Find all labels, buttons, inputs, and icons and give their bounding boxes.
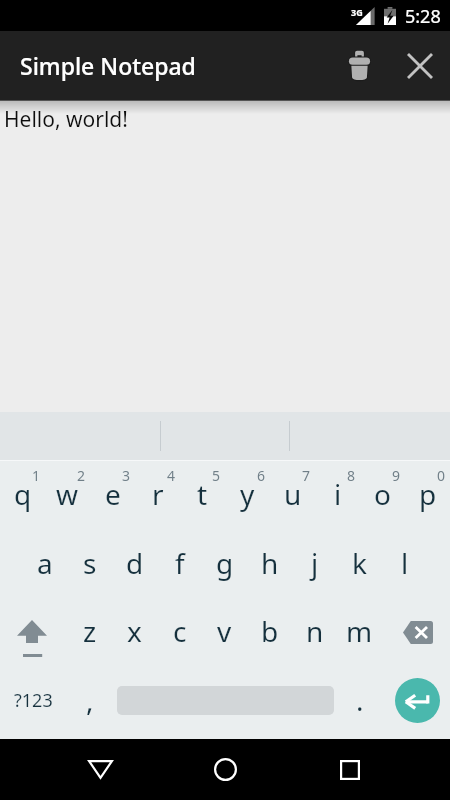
staticText: m [346,612,373,650]
button[interactable]: Enter [382,665,450,735]
staticText: r [152,475,164,513]
button[interactable]: 7 [270,461,315,530]
button[interactable]: 4 [135,461,180,530]
staticText: e [105,475,121,513]
button[interactable]: , [67,665,112,735]
button[interactable]: 1 [0,461,45,530]
staticText: i [334,475,342,513]
button[interactable]: v [202,599,247,669]
staticText: q [14,475,32,513]
staticText: z [83,612,97,650]
staticText: n [306,612,324,650]
staticText: 5:28 [405,4,441,29]
button[interactable]: a [22,530,67,599]
staticText: t [197,475,208,513]
staticText: f [175,544,185,582]
staticText: Simple Notepad [20,50,196,81]
button[interactable]: 8 [315,461,360,530]
staticText: h [261,544,279,582]
staticText: u [284,475,302,513]
button[interactable]: Home [187,744,263,795]
staticText: 3G [351,6,363,18]
button[interactable]: c [157,599,202,669]
staticText: 5 [212,466,221,485]
button[interactable]: Space [112,665,337,735]
staticText: d [126,544,144,582]
button[interactable]: 2 [45,461,90,530]
button[interactable]: ?123 [0,665,67,735]
button[interactable]: k [337,530,382,599]
button[interactable]: Back [62,744,138,795]
button[interactable]: b [247,599,292,669]
staticText: w [56,475,79,513]
button[interactable]: m [337,599,382,669]
button[interactable]: j [292,530,337,599]
staticText: y [240,475,255,513]
staticText: o [374,475,391,513]
button[interactable]: l [382,530,427,599]
staticText: 2 [77,466,86,485]
staticText: v [217,612,232,650]
staticText: s [83,544,97,582]
button[interactable]: f [157,530,202,599]
staticText: ?123 [14,688,53,713]
button[interactable]: h [247,530,292,599]
staticText: a [37,544,53,582]
staticText: Hello, world! [4,105,128,134]
staticText: 9 [392,466,401,485]
staticText: 1 [32,466,41,485]
button[interactable]: s [67,530,112,599]
staticText: l [401,544,409,582]
button[interactable]: d [112,530,157,599]
button[interactable]: 0 [405,461,450,530]
button[interactable]: Recent apps [312,744,388,795]
button[interactable]: 6 [225,461,270,530]
staticText: g [216,544,234,582]
button[interactable]: 5 [180,461,225,530]
button[interactable]: Close [389,31,449,100]
staticText: 8 [347,466,356,485]
button[interactable]: Delete note [329,31,389,100]
button[interactable]: n [292,599,337,669]
button[interactable]: 3 [90,461,135,530]
staticText: k [352,544,367,582]
staticText: c [173,612,187,650]
button[interactable]: 9 [360,461,405,530]
button[interactable]: z [67,599,112,669]
staticText: 6 [257,466,266,485]
button[interactable]: . [337,665,382,735]
button[interactable]: g [202,530,247,599]
staticText: 7 [302,466,311,485]
staticText: j [311,544,319,582]
staticText: 4 [167,466,176,485]
staticText: . [356,681,364,719]
button[interactable]: Shift [0,599,67,669]
staticText: b [261,612,279,650]
button[interactable]: x [112,599,157,669]
staticText: 0 [437,466,446,485]
staticText: x [127,612,142,650]
button[interactable]: Backspace [382,599,450,669]
staticText: p [419,475,437,513]
staticText: 3 [122,466,131,485]
staticText: , [86,681,94,719]
